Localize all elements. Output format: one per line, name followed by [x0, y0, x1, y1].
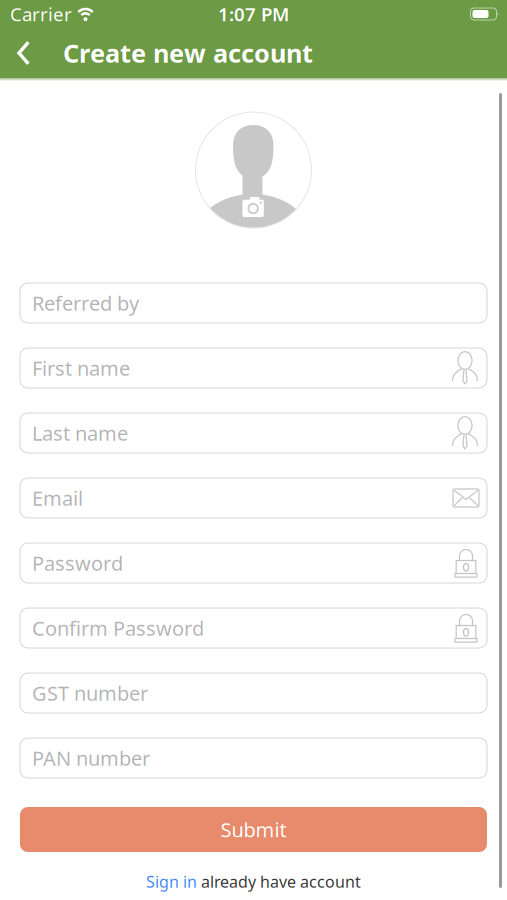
staticText: Last name — [32, 420, 128, 446]
button[interactable]: Submit — [20, 807, 487, 852]
button[interactable]: First name — [20, 348, 487, 388]
staticText: PAN number — [32, 745, 150, 771]
button[interactable]: Add profile photo — [195, 112, 311, 228]
button[interactable]: Sign in — [146, 871, 197, 892]
staticText: First name — [32, 355, 130, 381]
staticText: Referred by — [32, 290, 139, 316]
staticText: Password — [32, 550, 123, 576]
staticText: 1:07 PM — [218, 2, 289, 26]
button[interactable]: Back — [0, 41, 38, 65]
staticText: Sign in — [146, 871, 197, 892]
staticText: GST number — [32, 680, 148, 706]
button[interactable]: Email — [20, 478, 487, 518]
staticText: already have account — [201, 871, 361, 892]
button[interactable]: Password — [20, 543, 487, 583]
staticText: Email — [32, 485, 83, 511]
staticText: Carrier — [10, 2, 72, 26]
button[interactable]: PAN number — [20, 738, 487, 778]
staticText: Submit — [220, 816, 286, 843]
button[interactable]: Referred by — [20, 283, 487, 323]
button[interactable]: Confirm Password — [20, 608, 487, 648]
button[interactable]: GST number — [20, 673, 487, 713]
button[interactable]: Last name — [20, 413, 487, 453]
staticText: Create new account — [63, 36, 313, 70]
staticText: Confirm Password — [32, 615, 204, 641]
